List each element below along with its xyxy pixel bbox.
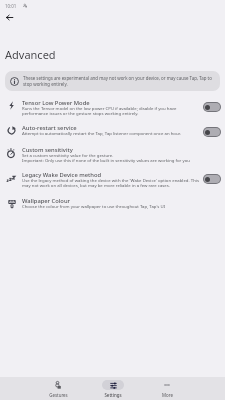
staticText: Settings xyxy=(104,392,122,398)
staticText: Auto-restart service xyxy=(22,124,77,132)
staticText: Attempt to automatically restart the Tap… xyxy=(22,130,181,136)
staticText: Advanced xyxy=(5,47,56,62)
button[interactable]: Settings xyxy=(99,380,127,398)
staticText: Legacy Wake Device method xyxy=(22,171,102,179)
button[interactable]: Toggle xyxy=(204,128,220,136)
staticText: Runs the Tensor model on the low power C… xyxy=(22,105,200,116)
staticText: Choose the colour from your wallpaper to… xyxy=(22,203,166,209)
button[interactable]: Gestures xyxy=(44,380,72,398)
button[interactable]: Auto-restart service xyxy=(0,120,225,138)
button[interactable]: Wallpaper Colour xyxy=(0,193,225,211)
button[interactable]: Toggle xyxy=(204,175,220,183)
button[interactable]: Toggle xyxy=(204,103,220,111)
staticText: These settings are experimental and may … xyxy=(23,75,215,88)
staticText: Wallpaper Colour xyxy=(22,197,70,205)
staticText: Use the legacy method of waking the devi… xyxy=(22,177,200,188)
button[interactable]: More xyxy=(153,380,181,398)
staticText: More xyxy=(162,392,173,398)
button[interactable]: Tensor Low Power Mode xyxy=(0,95,225,118)
button[interactable]: These settings are experimental and may … xyxy=(5,71,220,91)
button[interactable]: Legacy Wake Device method xyxy=(0,167,225,190)
staticText: 10:01 xyxy=(5,3,17,9)
staticText: Tensor Low Power Mode xyxy=(22,99,90,107)
button[interactable]: Custom sensitivity xyxy=(0,142,225,165)
staticText: Set a custom sensitivity value for the g… xyxy=(22,152,190,163)
staticText: Custom sensitivity xyxy=(22,146,73,154)
staticText: Gestures xyxy=(49,392,68,398)
button[interactable]: Back xyxy=(2,10,16,24)
